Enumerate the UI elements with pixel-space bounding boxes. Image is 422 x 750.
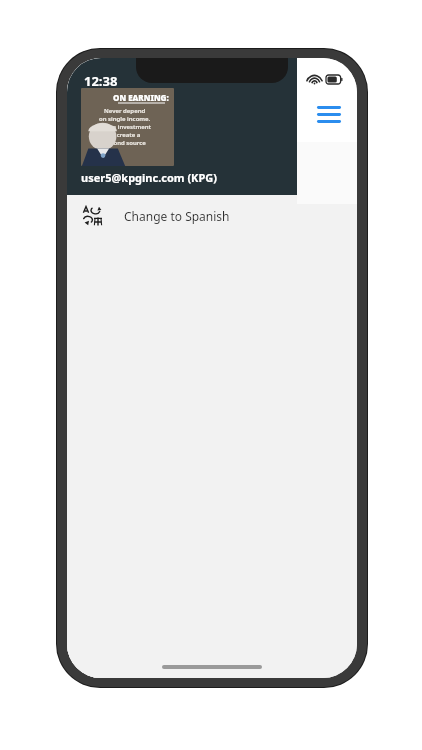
button[interactable]: Change to Spanish [67,195,297,237]
button[interactable]: Open navigation menu [309,94,349,134]
staticText: 12:38 [84,72,118,90]
staticText: Never depend [104,107,146,115]
staticText: on single income. [99,115,151,123]
staticText: second source [104,139,146,147]
staticText: Welcome back [81,178,169,196]
staticText: Change to Spanish [124,208,230,224]
staticText: Profile [192,218,232,234]
staticText: Hello, Brian [81,148,161,167]
staticText: ON EARNING: [113,92,169,103]
staticText: Make investment [100,123,151,131]
button[interactable]: Daily quote [81,88,174,166]
staticText: to create a [109,131,141,139]
staticText: user5@kpginc.com (KPG) [81,170,217,185]
